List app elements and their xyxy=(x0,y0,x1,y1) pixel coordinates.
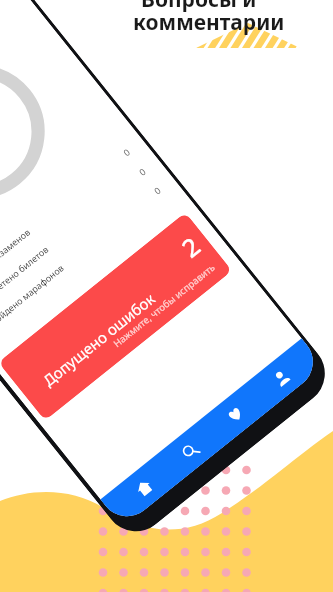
button[interactable]: Favorites xyxy=(210,389,260,440)
staticText: Приобретено билетов xyxy=(0,243,51,313)
staticText: комментарии xyxy=(133,8,285,37)
staticText: Пройдено экзаменов xyxy=(0,225,33,293)
button[interactable]: Profile xyxy=(256,353,306,403)
button[interactable]: Search xyxy=(164,426,215,476)
staticText: 2 xyxy=(174,229,207,264)
staticText: 0 xyxy=(151,183,163,196)
button[interactable]: 2 xyxy=(0,212,232,421)
button[interactable]: Пройдено экзаменов xyxy=(0,134,174,348)
staticText: 0 xyxy=(120,145,133,158)
staticText: 0 xyxy=(136,165,148,178)
staticText: Вопросы и xyxy=(141,0,257,14)
button[interactable]: Home xyxy=(118,463,169,513)
staticText: Пройдено марафонов xyxy=(0,261,66,331)
staticText: Допущено ошибок xyxy=(39,288,159,390)
staticText: Нажмите, чтобы исправить xyxy=(111,260,218,350)
